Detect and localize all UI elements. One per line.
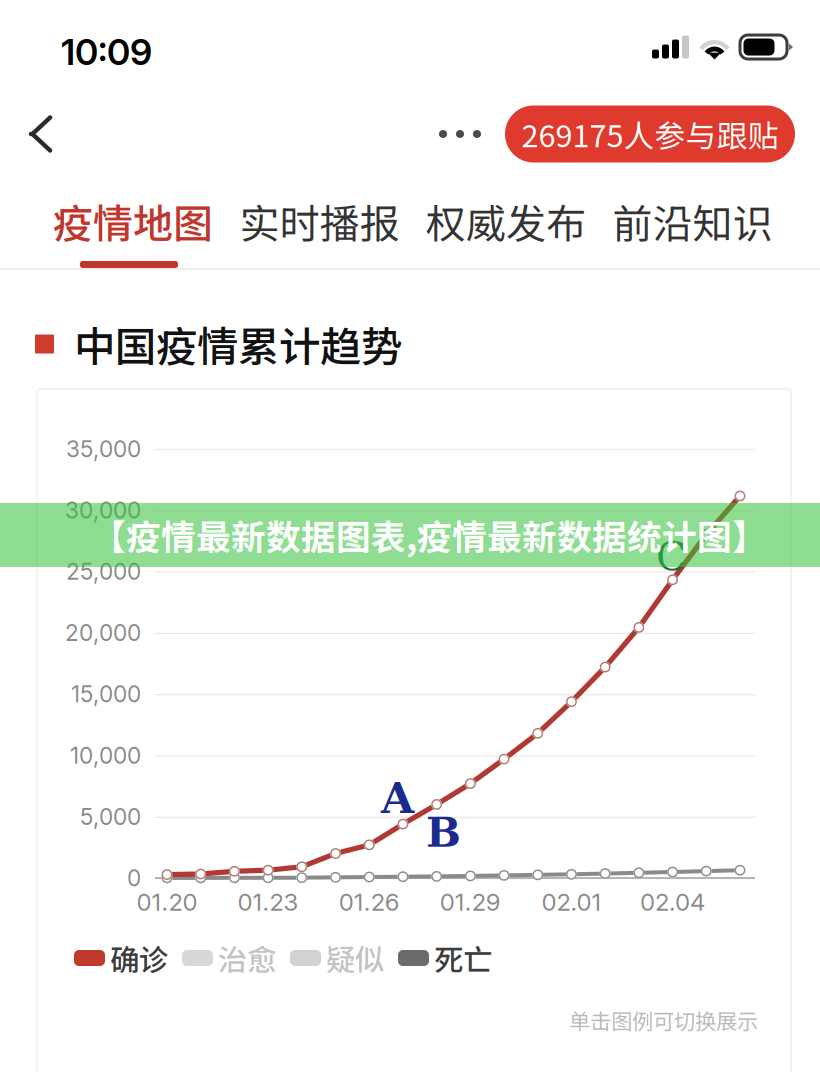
staticText: 疑似: [326, 937, 384, 979]
button[interactable]: 269175人参与跟贴: [505, 105, 795, 162]
staticText: 10:09: [61, 30, 152, 74]
button[interactable]: 权威发布: [426, 180, 586, 262]
staticText: 疫情地图: [53, 192, 213, 250]
button[interactable]: More: [443, 88, 477, 180]
button[interactable]: 确诊: [74, 940, 168, 976]
staticText: 中国疫情累计趋势: [74, 314, 402, 374]
staticText: 01.23: [238, 887, 299, 916]
button[interactable]: 疫情地图: [53, 180, 213, 262]
staticText: 01.29: [440, 887, 501, 916]
staticText: 20,000: [65, 619, 141, 646]
staticText: 269175人参与跟贴: [521, 112, 778, 156]
staticText: 单击图例可切换展示: [569, 1005, 758, 1035]
button[interactable]: 前沿知识: [612, 180, 772, 262]
staticText: 30,000: [65, 496, 141, 524]
staticText: 前沿知识: [612, 192, 772, 250]
button[interactable]: 实时播报: [239, 180, 399, 262]
staticText: 实时播报: [239, 192, 399, 250]
staticText: 【疫情最新数据图表,疫情最新数据统计图】: [91, 510, 767, 560]
button[interactable]: 治愈: [182, 940, 276, 976]
staticText: 治愈: [218, 937, 276, 979]
staticText: 25,000: [66, 558, 141, 585]
staticText: 确诊: [110, 937, 168, 979]
staticText: 02.01: [541, 887, 601, 916]
staticText: 10,000: [70, 742, 141, 769]
button[interactable]: 疑似: [290, 940, 384, 976]
staticText: 02.04: [640, 887, 705, 916]
staticText: 死亡: [434, 937, 492, 979]
button[interactable]: 死亡: [398, 940, 492, 976]
staticText: 35,000: [66, 435, 141, 463]
staticText: C: [656, 533, 687, 580]
staticText: A: [381, 773, 414, 823]
staticText: B: [426, 808, 461, 857]
staticText: 0: [127, 864, 141, 892]
staticText: 5,000: [80, 803, 141, 830]
staticText: 15,000: [71, 680, 141, 708]
staticText: 01.26: [339, 887, 400, 916]
button[interactable]: Back: [0, 88, 68, 180]
staticText: 权威发布: [426, 192, 586, 250]
staticText: 01.20: [136, 887, 197, 916]
